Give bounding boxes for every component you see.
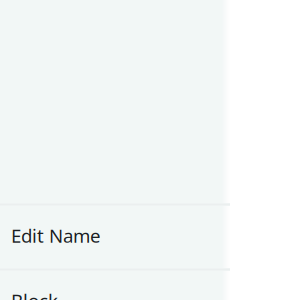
button[interactable]: Edit Name	[0, 203, 230, 268]
staticText: Block	[11, 288, 58, 300]
button[interactable]: Block	[0, 268, 230, 300]
staticText: Edit Name	[11, 223, 101, 248]
